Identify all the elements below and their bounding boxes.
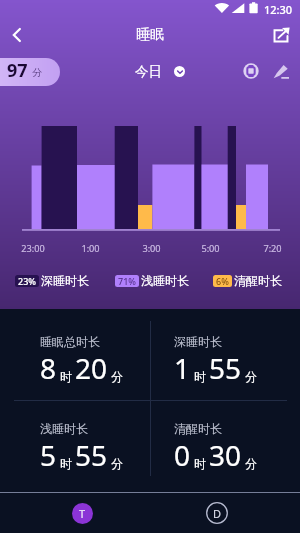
staticText: 分: [111, 456, 123, 471]
staticText: 1:00: [81, 242, 100, 255]
button[interactable]: 浅睡时长: [28, 411, 152, 481]
staticText: 分: [111, 369, 123, 384]
button[interactable]: Share: [266, 20, 296, 50]
staticText: 睡眠: [136, 26, 164, 44]
staticText: 今日: [135, 63, 162, 80]
staticText: 20: [75, 349, 108, 387]
staticText: 深睡时长: [41, 273, 89, 288]
button[interactable]: Tab T: [62, 493, 102, 533]
staticText: 71%: [118, 275, 136, 287]
staticText: 3:00: [142, 242, 161, 255]
staticText: 清醒时长: [234, 273, 282, 288]
button[interactable]: 清醒时长: [162, 411, 286, 481]
staticText: T: [79, 506, 86, 521]
staticText: 12:30: [264, 2, 293, 17]
button[interactable]: 71%: [115, 273, 189, 288]
staticText: 6%: [216, 275, 229, 287]
button[interactable]: 23%: [15, 273, 89, 288]
staticText: 时: [194, 456, 206, 471]
button[interactable]: 6%: [213, 273, 282, 288]
staticText: 时: [60, 456, 72, 471]
staticText: 浅睡时长: [40, 421, 88, 436]
button[interactable]: Edit: [266, 56, 296, 86]
staticText: 5:00: [201, 242, 220, 255]
staticText: 0: [174, 436, 191, 474]
staticText: 23:00: [21, 242, 45, 255]
staticText: 清醒时长: [174, 421, 222, 436]
staticText: 浅睡时长: [141, 273, 189, 288]
button[interactable]: Tab D: [197, 493, 237, 533]
staticText: 7:20: [263, 242, 282, 255]
button[interactable]: 深睡时长: [162, 324, 286, 394]
button[interactable]: 今日: [135, 63, 185, 80]
staticText: 1: [174, 349, 191, 387]
staticText: 97: [7, 58, 28, 81]
staticText: 23%: [18, 275, 36, 287]
staticText: 30: [209, 436, 242, 474]
button[interactable]: 睡眠总时长: [28, 324, 152, 394]
staticText: D: [213, 506, 222, 521]
button[interactable]: Back: [0, 18, 34, 52]
staticText: 5: [40, 436, 57, 474]
button[interactable]: Device: [236, 56, 266, 86]
staticText: 睡眠总时长: [40, 334, 100, 349]
staticText: 55: [209, 349, 242, 387]
staticText: 8: [40, 349, 57, 387]
staticText: 时: [60, 369, 72, 384]
staticText: 55: [75, 436, 108, 474]
staticText: 分: [245, 369, 257, 384]
button[interactable]: 97: [0, 58, 60, 86]
staticText: 时: [194, 369, 206, 384]
staticText: 分: [32, 66, 42, 79]
staticText: 分: [245, 456, 257, 471]
staticText: 深睡时长: [174, 334, 222, 349]
